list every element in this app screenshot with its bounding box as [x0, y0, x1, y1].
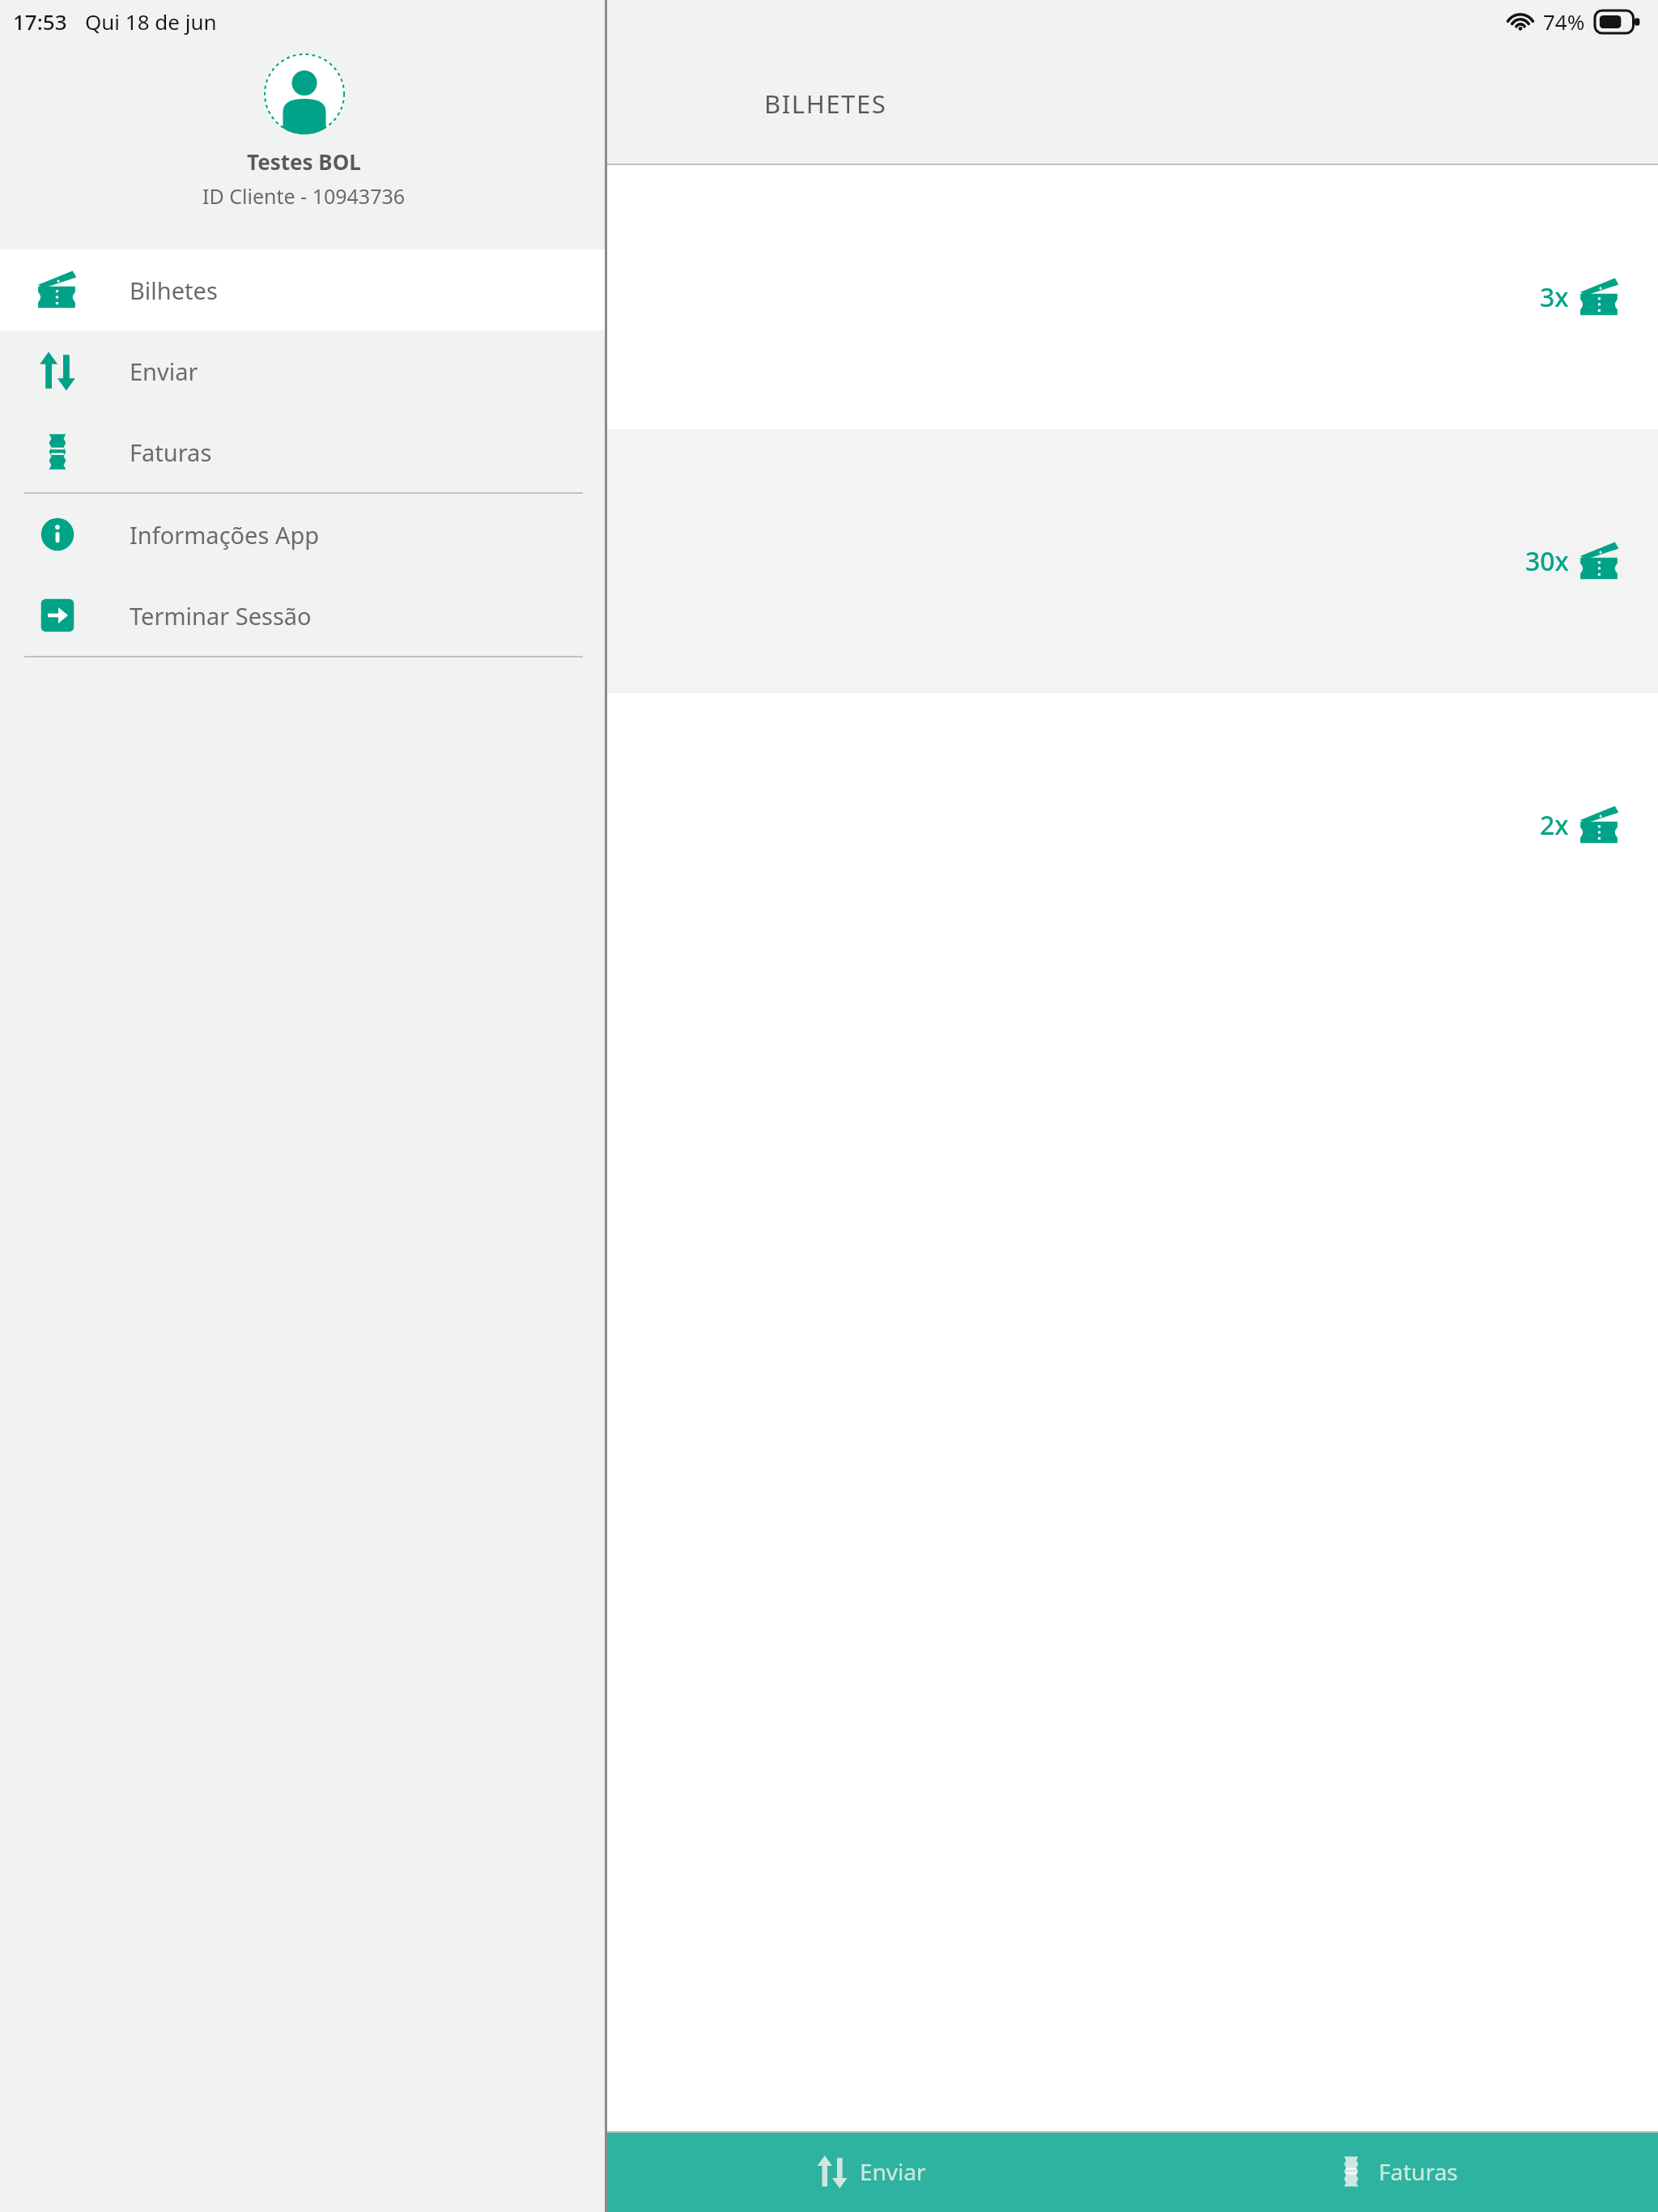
staticText: Qui 18 de jun — [85, 7, 217, 36]
staticText: Enviar — [860, 2156, 926, 2187]
button[interactable]: Faturas — [0, 411, 607, 492]
button[interactable]: 3x — [607, 165, 1658, 429]
staticText: BILHETES — [764, 87, 887, 121]
button[interactable]: Faturas — [1133, 2131, 1658, 2212]
button[interactable]: 30x — [607, 429, 1658, 693]
button[interactable]: Informações App — [0, 494, 607, 575]
button[interactable]: Enviar — [607, 2131, 1133, 2212]
staticText: Faturas — [130, 436, 212, 468]
staticText: 3x — [1540, 279, 1569, 315]
staticText: Terminar Sessão — [130, 600, 312, 632]
button[interactable]: Terminar Sessão — [0, 575, 607, 656]
staticText: 2x — [1540, 807, 1569, 843]
staticText: Informações App — [130, 519, 320, 551]
staticText: Enviar — [130, 355, 198, 387]
staticText: ID Cliente - 10943736 — [202, 182, 406, 210]
staticText: Bilhetes — [130, 274, 218, 306]
staticText: 30x — [1525, 543, 1569, 579]
button[interactable]: Bilhetes — [0, 249, 607, 330]
button[interactable]: Enviar — [0, 330, 607, 411]
staticText: 17:53 — [13, 7, 67, 36]
staticText: 74% — [1543, 7, 1585, 36]
staticText: Testes BOL — [247, 147, 361, 176]
button[interactable]: 2x — [607, 693, 1658, 957]
staticText: Faturas — [1379, 2156, 1458, 2187]
